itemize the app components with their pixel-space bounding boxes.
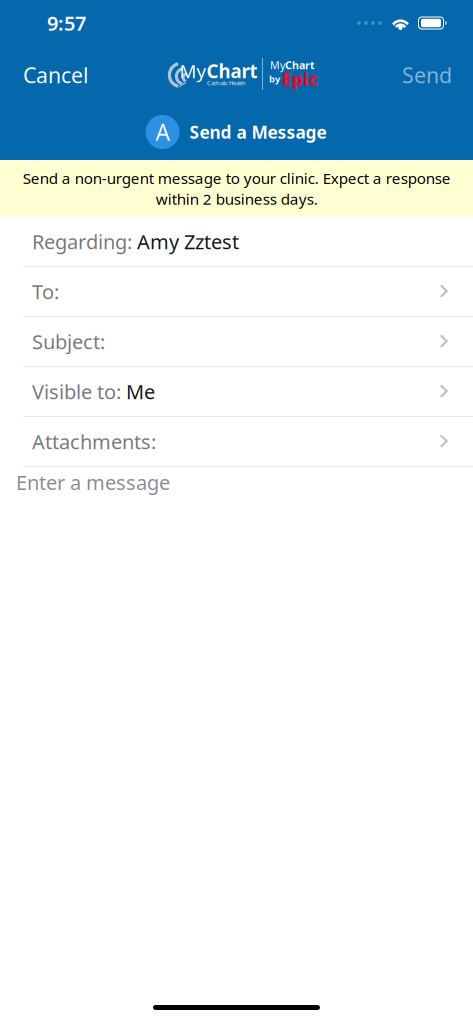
staticText: Visible to: (32, 378, 121, 405)
button[interactable]: Attachments: (0, 417, 473, 467)
button[interactable]: To: (0, 267, 473, 317)
staticText: by (269, 73, 280, 85)
staticText: Cancel (23, 61, 89, 89)
staticText: My (270, 58, 285, 72)
staticText: My (179, 59, 206, 83)
staticText: Attachments: (32, 428, 156, 455)
button[interactable]: Regarding: (0, 217, 473, 267)
staticText: Enter a message (16, 469, 170, 496)
staticText: Regarding: (32, 228, 132, 255)
staticText: Catholic Health (207, 79, 246, 87)
staticText: Send (402, 61, 452, 89)
staticText: Chart (285, 58, 315, 72)
button[interactable]: Send (390, 47, 473, 103)
staticText: Subject: (32, 328, 105, 355)
staticText: Send a Message (189, 120, 326, 143)
staticText: 9:57 (47, 10, 86, 36)
button[interactable]: Cancel (0, 47, 101, 103)
staticText: Epic (282, 67, 318, 90)
staticText: Chart (206, 59, 257, 83)
staticText: Amy Zztest (132, 228, 239, 255)
button[interactable]: Visible to: (0, 367, 473, 417)
staticText: A (155, 117, 169, 147)
button[interactable]: Subject: (0, 317, 473, 367)
staticText: To: (32, 278, 59, 305)
staticText: Me (121, 378, 155, 405)
staticText: Send a non-urgent message to your clinic… (22, 168, 450, 209)
